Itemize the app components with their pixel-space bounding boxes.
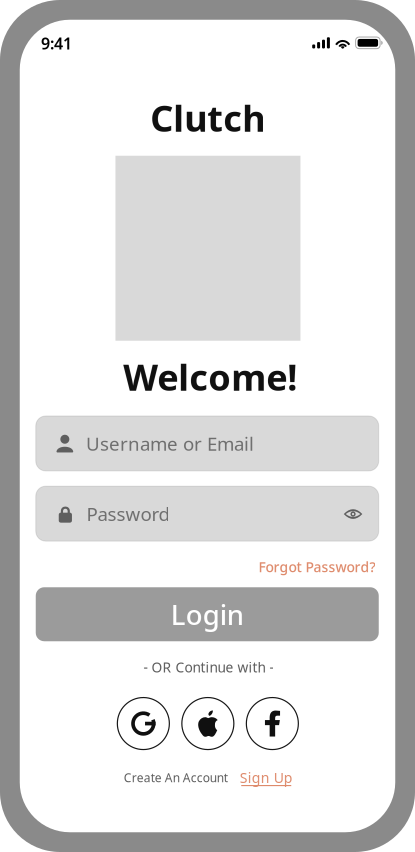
staticText: Forgot Password? bbox=[258, 557, 375, 576]
staticText: Create An Account bbox=[124, 769, 228, 786]
staticText: Clutch bbox=[150, 94, 265, 142]
button[interactable]: Login bbox=[36, 587, 379, 641]
button[interactable]: Continue with Facebook bbox=[246, 697, 299, 750]
button[interactable]: Forgot Password? bbox=[255, 553, 378, 580]
staticText: Login bbox=[171, 595, 244, 633]
staticText: Password bbox=[86, 501, 169, 526]
staticText: Sign Up bbox=[240, 768, 293, 787]
button[interactable]: Continue with Apple bbox=[181, 697, 234, 750]
button[interactable]: Continue with Google bbox=[117, 697, 170, 750]
staticText: Welcome! bbox=[123, 353, 297, 401]
button[interactable]: Show password bbox=[333, 494, 373, 534]
staticText: Username or Email bbox=[86, 431, 254, 456]
staticText: - OR Continue with - bbox=[143, 658, 273, 677]
button[interactable]: Sign Up bbox=[238, 772, 294, 786]
staticText: 9:41 bbox=[41, 33, 72, 54]
